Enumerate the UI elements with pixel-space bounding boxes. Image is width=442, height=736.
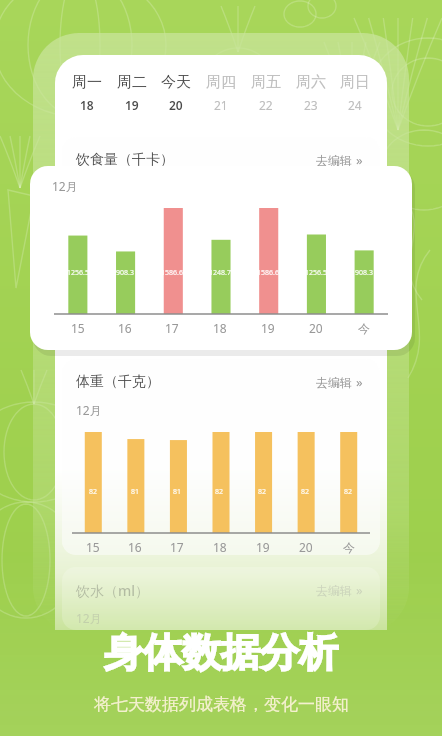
staticText: 15 [86,539,100,555]
staticText: 周六 [296,73,326,92]
staticText: 20 [299,539,313,555]
staticText: 24 [348,97,362,113]
staticText: 16 [118,320,132,336]
staticText: 18 [80,97,94,113]
staticText: 饮水（ml） [76,581,150,600]
staticText: 周日 [340,73,370,92]
staticText: 今 [358,321,370,336]
staticText: 1586.6 [161,268,183,278]
staticText: 1256.5 [305,268,327,278]
staticText: 19 [256,539,270,555]
staticText: 去编辑 [316,153,352,168]
staticText: 20 [169,97,183,113]
staticText: 16 [128,539,142,555]
staticText: 去编辑 [316,375,352,390]
button[interactable]: 去编辑 [313,148,366,172]
staticText: 82 [258,487,267,497]
staticText: 81 [173,487,182,497]
staticText: 体重（千克） [76,373,160,391]
staticText: 去编辑 [316,583,352,598]
staticText: 周二 [117,73,147,92]
staticText: 82 [89,487,98,497]
staticText: 今天 [161,73,191,92]
button[interactable]: 今天 [155,67,197,119]
button[interactable]: 去编辑 [313,578,366,602]
button[interactable]: 周日 [334,67,376,119]
button[interactable]: 周四 [200,67,242,119]
staticText: 21 [214,97,228,113]
staticText: 12月 [76,610,102,626]
staticText: 18 [213,320,227,336]
button[interactable]: 去编辑 [313,370,366,394]
button[interactable]: 周二 [111,67,153,119]
staticText: 17 [165,320,179,336]
staticText: 19 [261,320,275,336]
staticText: 周五 [251,73,281,92]
staticText: 81 [131,487,140,497]
button[interactable]: 周五 [245,67,287,119]
staticText: 12月 [76,402,102,418]
staticText: 今 [343,540,355,555]
staticText: 23 [304,97,318,113]
staticText: » [356,373,363,391]
staticText: » [356,581,363,599]
staticText: 82 [301,487,310,497]
staticText: 周一 [72,73,102,92]
staticText: 17 [170,539,184,555]
staticText: 12月 [52,178,78,194]
button[interactable]: 周六 [290,67,332,119]
staticText: 15 [71,320,85,336]
staticText: 1248.7 [209,268,231,278]
staticText: 1586.6 [257,268,279,278]
staticText: 908.3 [355,268,373,278]
staticText: 18 [213,539,227,555]
staticText: 20 [309,320,323,336]
button[interactable]: 周一 [66,67,108,119]
staticText: 82 [344,487,353,497]
staticText: 将七天数据列成表格，变化一眼知 [94,694,349,715]
staticText: 19 [125,97,139,113]
staticText: 饮食量（千卡） [76,151,174,169]
staticText: 22 [259,97,273,113]
staticText: » [356,151,363,169]
staticText: 身体数据分析 [104,628,338,677]
staticText: 82 [215,487,224,497]
staticText: 周四 [206,73,236,92]
staticText: 908.3 [116,268,134,278]
staticText: 1256.5 [67,268,89,278]
